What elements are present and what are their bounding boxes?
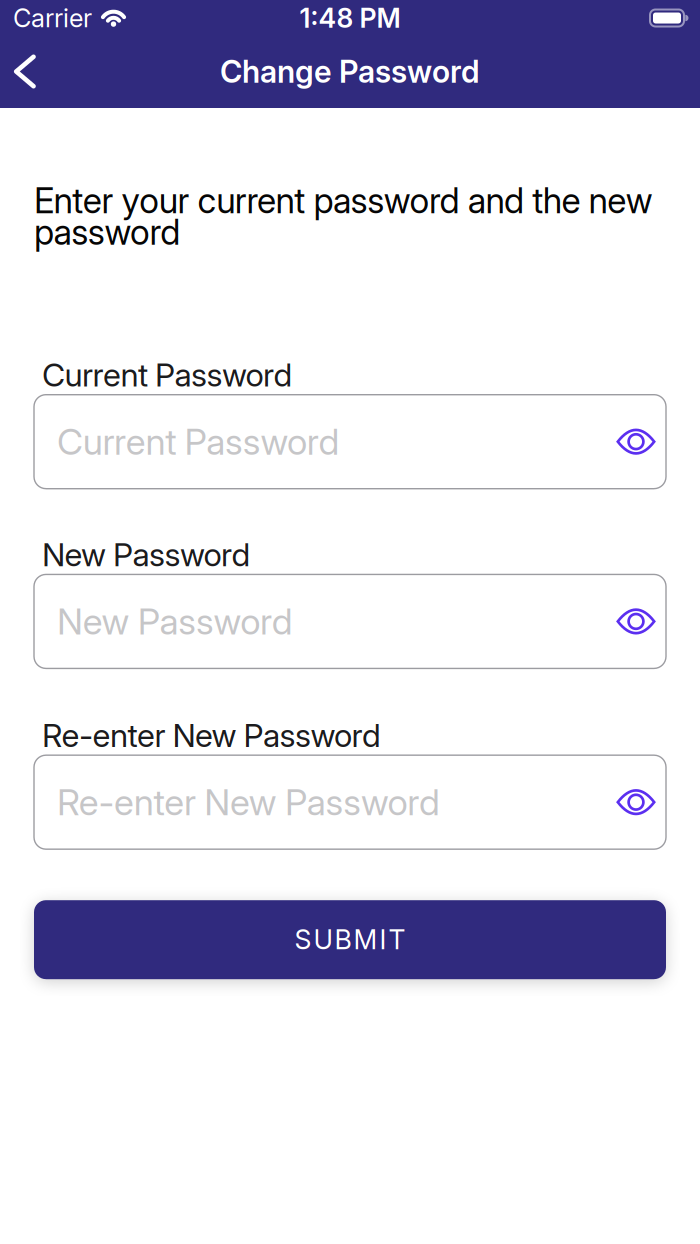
staticText: Change Password (220, 53, 480, 90)
button[interactable]: Show re-enter new password (611, 784, 661, 820)
staticText: Re-enter New Password (57, 781, 440, 823)
staticText: 1:48 PM (299, 2, 400, 34)
staticText: Current Password (57, 420, 339, 463)
button[interactable]: Back (0, 47, 36, 100)
button[interactable]: Current Password (34, 395, 666, 489)
staticText: S U B M I T (294, 924, 405, 955)
button[interactable]: Submit (34, 900, 666, 979)
button[interactable]: Show current password (611, 424, 661, 460)
staticText: Current Password (42, 356, 292, 394)
staticText: New Password (42, 536, 250, 573)
staticText: New Password (57, 600, 293, 643)
staticText: Enter your current password and the new … (34, 185, 653, 248)
button[interactable]: New Password (34, 574, 666, 668)
staticText: Re-enter New Password (42, 716, 381, 754)
button[interactable]: Re-enter New Password (34, 755, 666, 849)
staticText: Carrier (13, 3, 92, 33)
button[interactable]: Show new password (611, 603, 661, 639)
